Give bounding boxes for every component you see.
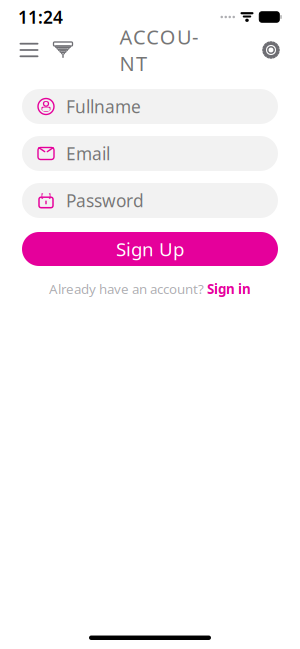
staticText: Fullname <box>66 95 141 118</box>
button[interactable]: Menu <box>12 33 46 67</box>
staticText: Email <box>66 142 110 165</box>
button[interactable]: Already have an account? <box>49 280 251 298</box>
staticText: Password <box>66 189 144 212</box>
button[interactable]: Email <box>22 136 278 171</box>
button[interactable]: Filter <box>46 33 80 67</box>
button[interactable]: Password <box>22 183 278 218</box>
staticText: Already have an account? <box>49 280 204 298</box>
staticText: 11:24 <box>18 5 63 28</box>
button[interactable]: Settings <box>254 33 288 67</box>
button[interactable]: Sign Up <box>22 232 278 266</box>
staticText: Sign in <box>207 280 251 298</box>
button[interactable]: Fullname <box>22 89 278 124</box>
staticText: Sign Up <box>116 237 184 261</box>
staticText: ACCOUNT <box>119 23 214 76</box>
